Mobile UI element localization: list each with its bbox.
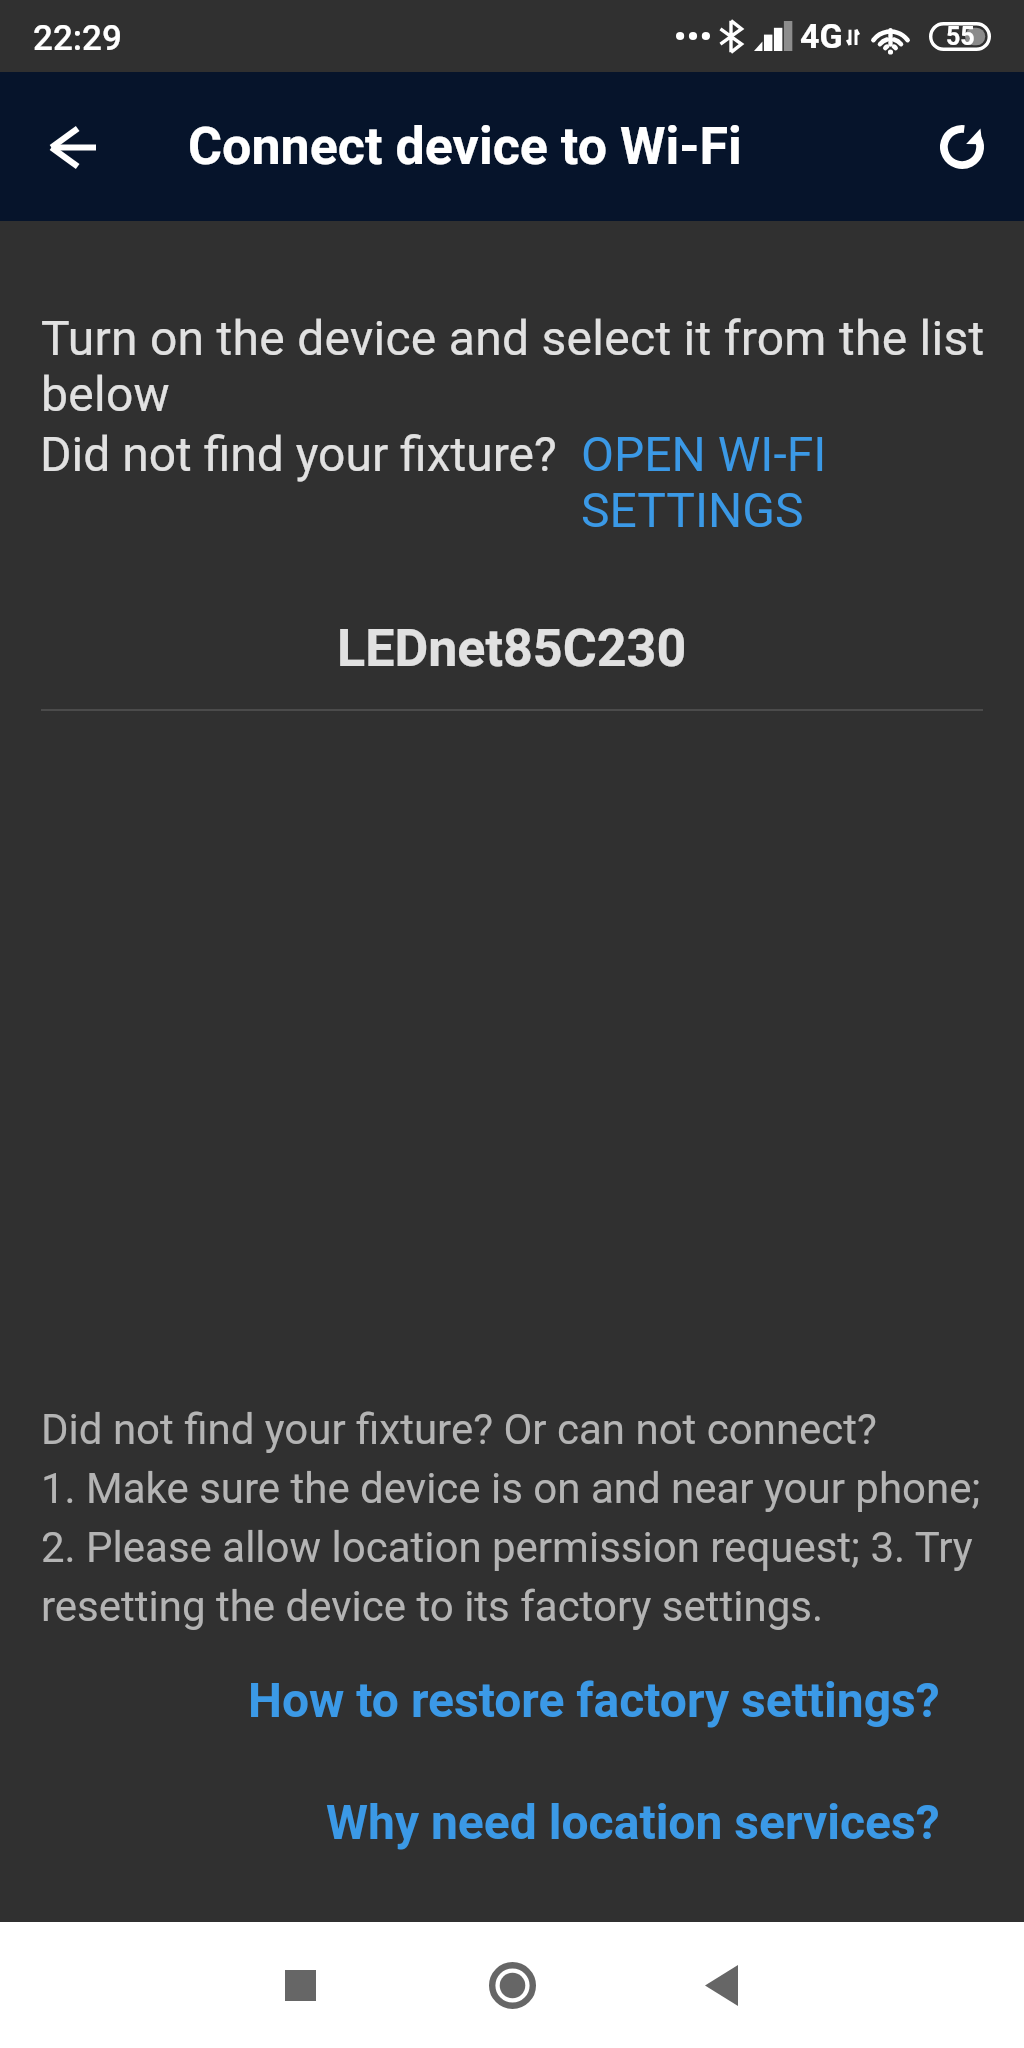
button[interactable]: Why need location services? — [0, 1787, 1024, 1857]
staticText: Why need location services? — [326, 1794, 940, 1850]
staticText: 55 — [946, 22, 975, 51]
staticText: 4G — [800, 16, 843, 56]
staticText: Turn on the device and select it from th… — [41, 310, 1001, 423]
button[interactable]: Home — [456, 1922, 568, 2048]
staticText: Connect device to Wi-Fi — [188, 116, 742, 177]
button[interactable]: OPEN WI-FI SETTINGS — [581, 426, 990, 539]
button[interactable]: LEDnet85C230 — [0, 612, 1024, 684]
staticText: LEDnet85C230 — [337, 618, 687, 679]
button[interactable]: Recents — [244, 1922, 356, 2048]
button[interactable]: Back — [24, 99, 120, 195]
button[interactable]: Refresh — [914, 99, 1010, 195]
staticText: Did not find your fixture? — [40, 426, 581, 482]
staticText: Did not find your fixture? Or can not co… — [41, 1405, 1024, 1631]
staticText: 22:29 — [33, 18, 122, 59]
button[interactable]: Back — [665, 1922, 777, 2048]
button[interactable]: How to restore factory settings? — [0, 1665, 1024, 1735]
staticText: How to restore factory settings? — [248, 1672, 940, 1728]
